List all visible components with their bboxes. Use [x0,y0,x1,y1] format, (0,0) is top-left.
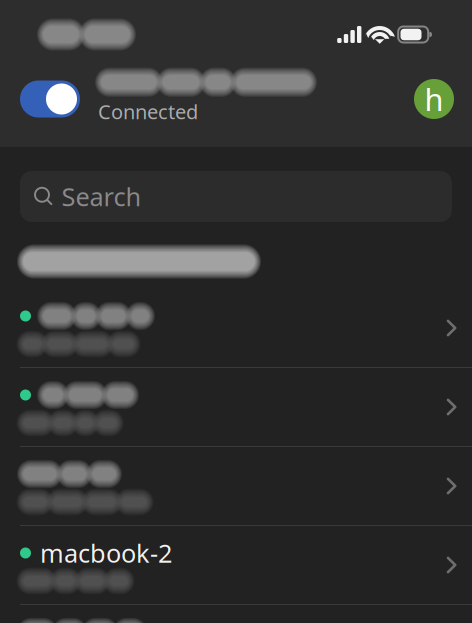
staticText: Connected [98,98,198,125]
button[interactable] [0,368,472,446]
button[interactable] [0,605,472,623]
staticText: Search [61,180,141,213]
button[interactable] [0,289,472,367]
staticText: macbook-2 [40,536,172,570]
button[interactable]: Search [20,171,452,222]
button[interactable]: VPN connection toggle [20,80,80,117]
button[interactable]: macbook-2 [0,526,472,604]
staticText: h [424,79,443,119]
button[interactable] [0,447,472,525]
button[interactable]: Account [414,79,454,119]
